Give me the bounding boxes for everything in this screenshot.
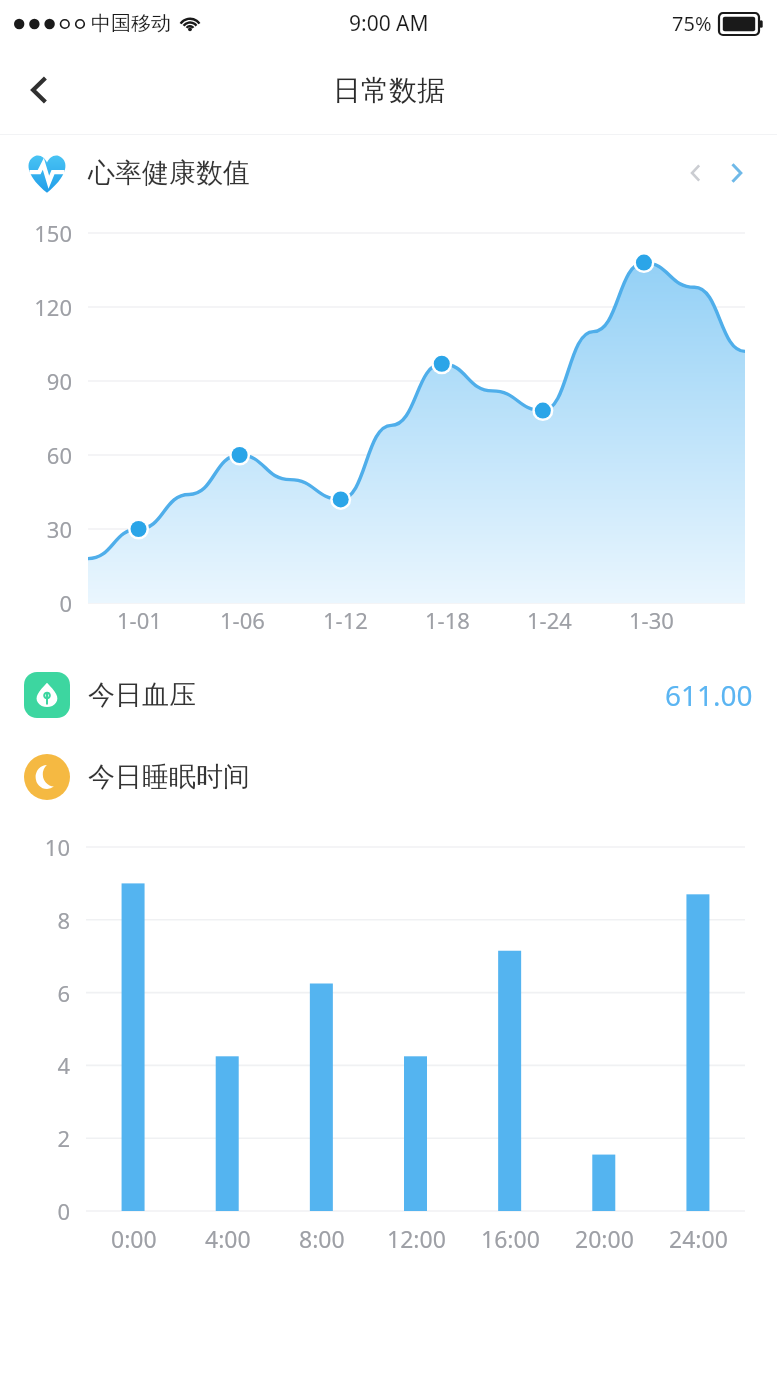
staticText: 611.00	[665, 676, 753, 714]
staticText: 日常数据	[333, 73, 445, 108]
staticText: 1-12	[323, 605, 368, 635]
staticText: 60	[0, 440, 72, 470]
staticText: 24:00	[669, 1223, 728, 1254]
button[interactable]: Next	[719, 156, 753, 190]
staticText: 20:00	[575, 1223, 634, 1254]
staticText: 8:00	[299, 1223, 345, 1254]
staticText: 2	[0, 1123, 70, 1153]
staticText: 今日血压	[88, 678, 196, 712]
staticText: 6	[0, 978, 70, 1008]
staticText: 1-24	[527, 605, 572, 635]
staticText: 中国移动	[91, 11, 171, 36]
staticText: 16:00	[481, 1223, 540, 1254]
staticText: 8	[0, 905, 70, 935]
staticText: 0	[0, 1196, 70, 1226]
staticText: 0	[0, 588, 72, 618]
staticText: 90	[0, 366, 72, 396]
button[interactable]: 今日血压	[0, 655, 777, 735]
staticText: 0:00	[111, 1223, 157, 1254]
staticText: 1-06	[220, 605, 265, 635]
staticText: 120	[0, 292, 72, 322]
button[interactable]: Previous	[679, 156, 713, 190]
staticText: 12:00	[387, 1223, 446, 1254]
staticText: 1-01	[117, 605, 162, 635]
staticText: 9:00 AM	[349, 9, 429, 38]
staticText: 75%	[672, 10, 712, 37]
staticText: 10	[0, 832, 70, 862]
staticText: 30	[0, 514, 72, 544]
staticText: 心率健康数值	[88, 156, 250, 190]
staticText: 1-30	[629, 605, 674, 635]
button[interactable]: Back	[8, 58, 72, 122]
staticText: 4:00	[205, 1223, 251, 1254]
staticText: 1-18	[425, 605, 470, 635]
staticText: 150	[0, 218, 72, 248]
staticText: 4	[0, 1050, 70, 1080]
staticText: 今日睡眠时间	[88, 760, 250, 794]
